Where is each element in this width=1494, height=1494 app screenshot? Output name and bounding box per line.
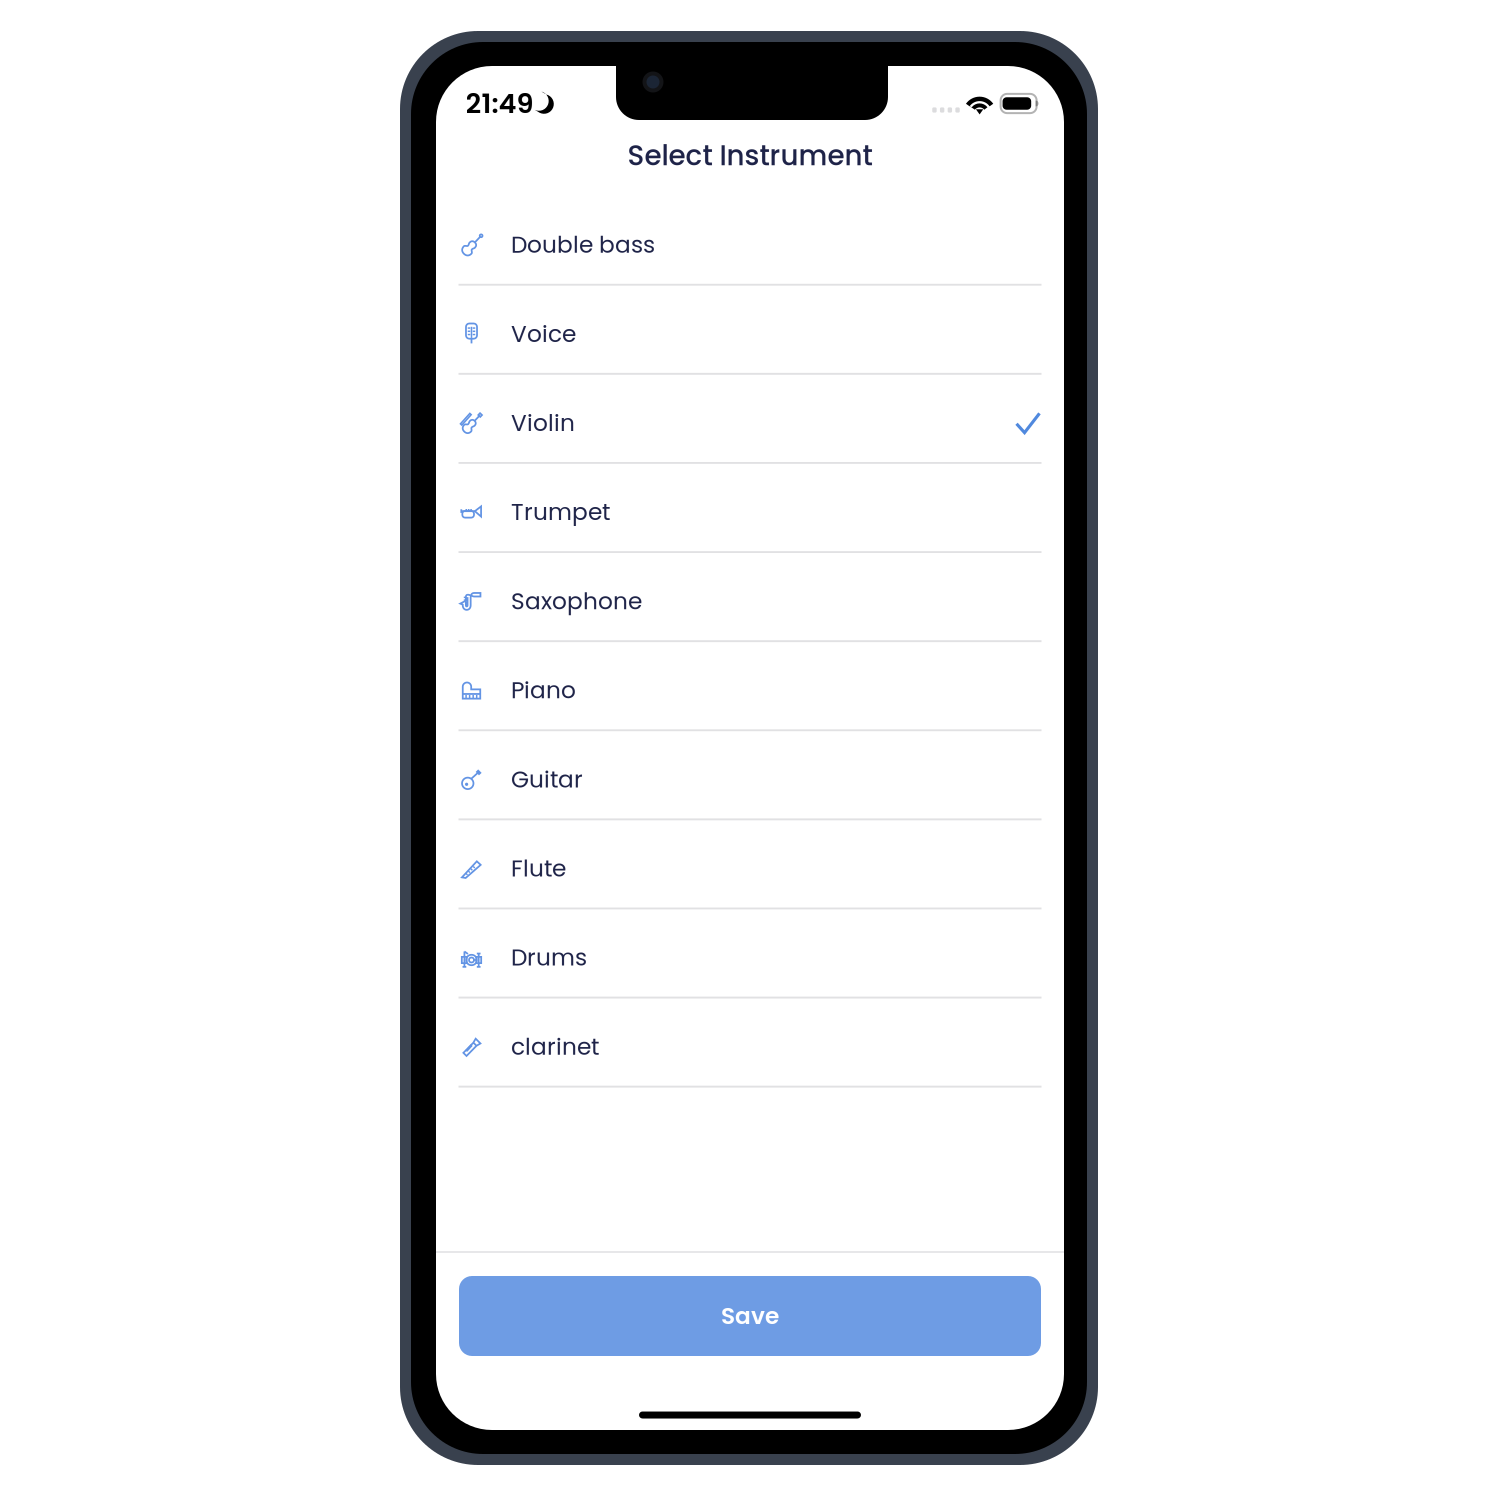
staticText: clarinet bbox=[511, 1030, 599, 1063]
button[interactable]: clarinet bbox=[436, 998, 1064, 1088]
button[interactable]: Saxophone bbox=[436, 553, 1064, 642]
staticText: Select Instrument bbox=[627, 136, 872, 175]
staticText: Guitar bbox=[511, 763, 583, 796]
staticText: Drums bbox=[511, 941, 587, 974]
staticText: Trumpet bbox=[511, 496, 610, 528]
staticText: Save bbox=[721, 1300, 779, 1332]
button[interactable]: Flute bbox=[436, 820, 1064, 909]
button[interactable]: Piano bbox=[436, 642, 1064, 731]
button[interactable]: Save bbox=[459, 1276, 1041, 1356]
staticText: Piano bbox=[511, 674, 576, 706]
button[interactable]: Double bass bbox=[436, 197, 1064, 286]
staticText: Double bass bbox=[511, 228, 655, 261]
staticText: 21:49 bbox=[465, 84, 533, 123]
button[interactable]: Violin bbox=[436, 375, 1064, 464]
button[interactable]: Drums bbox=[436, 909, 1064, 998]
button[interactable]: Trumpet bbox=[436, 464, 1064, 553]
staticText: Saxophone bbox=[511, 585, 642, 617]
button[interactable]: Guitar bbox=[436, 731, 1064, 820]
staticText: Violin bbox=[511, 407, 575, 439]
staticText: Flute bbox=[511, 852, 566, 885]
button[interactable]: Voice bbox=[436, 286, 1064, 375]
staticText: Voice bbox=[511, 318, 576, 350]
